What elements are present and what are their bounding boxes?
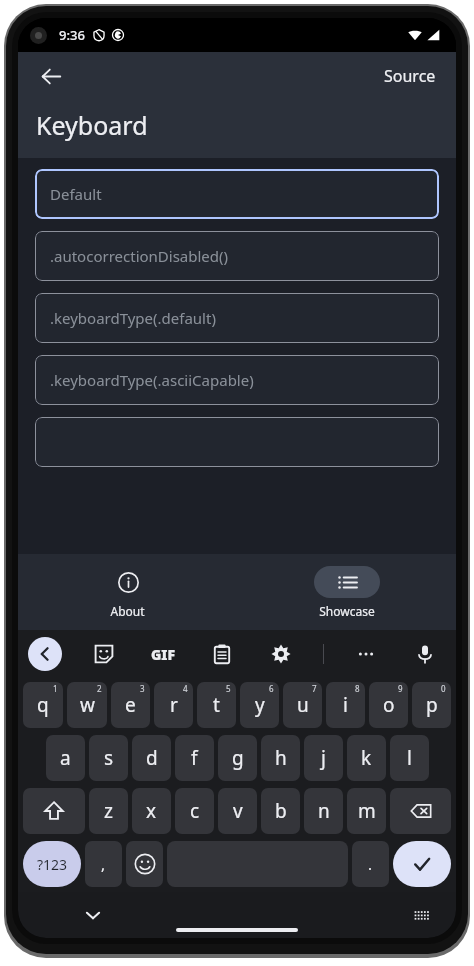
staticText: d — [146, 745, 158, 771]
button[interactable]: GIF — [146, 637, 180, 671]
staticText: e — [125, 692, 136, 718]
button[interactable]: More options — [349, 637, 383, 671]
button[interactable]: o — [369, 682, 408, 728]
button[interactable]: Backspace — [390, 788, 451, 834]
button[interactable]: i — [326, 682, 365, 728]
staticText: 4 — [183, 683, 188, 694]
button[interactable]: Enter — [393, 841, 451, 887]
staticText: 0 — [441, 683, 446, 694]
staticText: t — [213, 692, 220, 718]
staticText: . — [368, 854, 373, 874]
button[interactable]: . — [352, 841, 389, 887]
button[interactable]: d — [132, 735, 171, 781]
button[interactable]: .keyboardType(.asciiCapable) — [35, 355, 439, 405]
staticText: 1 — [53, 683, 58, 694]
staticText: l — [407, 745, 412, 771]
staticText: r — [170, 692, 178, 718]
staticText: w — [80, 692, 95, 718]
button[interactable]: s — [89, 735, 128, 781]
staticText: .autocorrectionDisabled() — [50, 246, 229, 266]
staticText: h — [275, 745, 287, 771]
staticText: s — [104, 745, 114, 771]
staticText: 2 — [97, 683, 102, 694]
button[interactable]: n — [304, 788, 343, 834]
button[interactable]: x — [132, 788, 171, 834]
staticText: a — [60, 745, 71, 771]
button[interactable]: Shift — [23, 788, 85, 834]
button[interactable]: y — [240, 682, 279, 728]
button[interactable]: e — [111, 682, 150, 728]
button[interactable]: .keyboardType(.default) — [35, 293, 439, 343]
button[interactable]: Hide keyboard — [78, 900, 108, 930]
staticText: i — [343, 692, 348, 718]
staticText: m — [358, 798, 376, 824]
button[interactable]: j — [304, 735, 343, 781]
button[interactable]: w — [67, 682, 107, 728]
staticText: z — [104, 798, 113, 824]
staticText: 6 — [269, 683, 274, 694]
button[interactable]: r — [154, 682, 193, 728]
staticText: 9 — [398, 683, 403, 694]
staticText: g — [232, 745, 244, 771]
staticText: .keyboardType(.asciiCapable) — [50, 370, 254, 390]
button[interactable]: v — [218, 788, 257, 834]
staticText: 7 — [312, 683, 317, 694]
button[interactable]: g — [218, 735, 257, 781]
button[interactable]: q — [23, 682, 63, 728]
staticText: Keyboard — [36, 108, 148, 142]
button[interactable]: Source — [380, 59, 440, 93]
button[interactable]: z — [89, 788, 128, 834]
staticText: y — [255, 692, 265, 718]
staticText: x — [146, 798, 157, 824]
button[interactable]: Back — [34, 59, 68, 93]
staticText: 9:36 — [59, 26, 85, 44]
staticText: 8 — [355, 683, 360, 694]
button[interactable]: Switch keyboard — [406, 900, 436, 930]
button[interactable]: About — [18, 554, 237, 630]
button[interactable]: l — [390, 735, 429, 781]
button[interactable]: Stickers — [87, 637, 121, 671]
staticText: v — [233, 798, 243, 824]
staticText: ?123 — [37, 855, 68, 874]
button[interactable]: Emoji — [126, 841, 163, 887]
button[interactable]: .autocorrectionDisabled() — [35, 231, 439, 281]
staticText: n — [318, 798, 330, 824]
button[interactable]: m — [347, 788, 386, 834]
staticText: .keyboardType(.default) — [50, 308, 216, 328]
staticText: About — [110, 603, 145, 619]
staticText: 5 — [226, 683, 231, 694]
staticText: Showcase — [319, 603, 375, 619]
staticText: b — [275, 798, 287, 824]
staticText: j — [321, 745, 326, 771]
button[interactable]: b — [261, 788, 300, 834]
staticText: p — [426, 692, 438, 718]
button[interactable]: , — [85, 841, 122, 887]
staticText: o — [383, 692, 395, 718]
button[interactable]: Showcase — [237, 554, 456, 630]
button[interactable]: f — [175, 735, 214, 781]
button[interactable]: Default — [35, 169, 439, 219]
staticText: u — [297, 692, 309, 718]
button[interactable]: h — [261, 735, 300, 781]
button[interactable]: t — [197, 682, 236, 728]
button[interactable]: ?123 — [23, 841, 81, 887]
button[interactable]: Collapse toolbar — [28, 637, 62, 671]
button[interactable]: p — [412, 682, 451, 728]
button[interactable]: Settings — [264, 637, 298, 671]
staticText: k — [361, 745, 372, 771]
button[interactable]: c — [175, 788, 214, 834]
button[interactable]: u — [283, 682, 322, 728]
button[interactable]: Voice input — [408, 637, 442, 671]
button[interactable] — [35, 417, 439, 467]
staticText: , — [101, 854, 106, 874]
button[interactable]: Clipboard — [205, 637, 239, 671]
staticText: GIF — [151, 645, 176, 664]
staticText: c — [190, 798, 200, 824]
staticText: 3 — [140, 683, 145, 694]
button[interactable]: k — [347, 735, 386, 781]
button[interactable]: a — [46, 735, 85, 781]
staticText: f — [191, 745, 198, 771]
staticText: q — [37, 692, 49, 718]
staticText: Source — [384, 65, 436, 87]
